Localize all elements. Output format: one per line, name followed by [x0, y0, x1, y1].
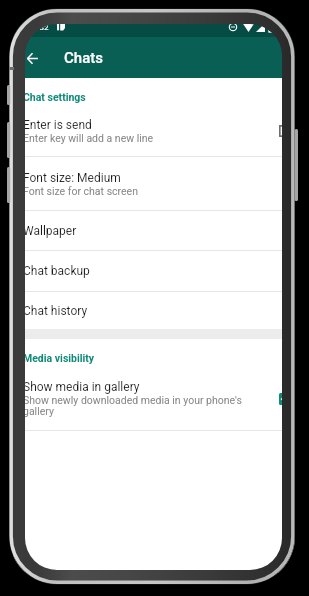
staticText: Chat settings [23, 91, 86, 103]
staticText: 9:32 [33, 23, 49, 32]
button[interactable]: Enter is send [13, 106, 300, 156]
staticText: Enter is send [23, 118, 92, 132]
button[interactable]: Font size: Medium [13, 157, 300, 210]
staticText: Chat history [23, 304, 88, 318]
button[interactable]: Enter is send [279, 125, 291, 137]
button[interactable]: Back [22, 48, 42, 68]
button[interactable]: Chat backup [13, 251, 300, 291]
button[interactable]: Show media in gallery [13, 367, 300, 430]
staticText: Font size for chat screen [23, 185, 138, 197]
button[interactable]: Wallpaper [13, 211, 300, 250]
staticText: Chat backup [23, 264, 90, 278]
staticText: Media visibility [23, 352, 95, 364]
button[interactable]: Chat history [13, 292, 300, 329]
button[interactable]: Show media in gallery [279, 393, 291, 405]
staticText: Font size: Medium [23, 171, 121, 185]
staticText: Show media in gallery [23, 380, 140, 394]
staticText: Enter key will add a new line [23, 132, 154, 144]
staticText: Chats [64, 49, 103, 67]
staticText: Show newly downloaded media in your phon… [23, 394, 257, 417]
staticText: Wallpaper [23, 224, 77, 238]
